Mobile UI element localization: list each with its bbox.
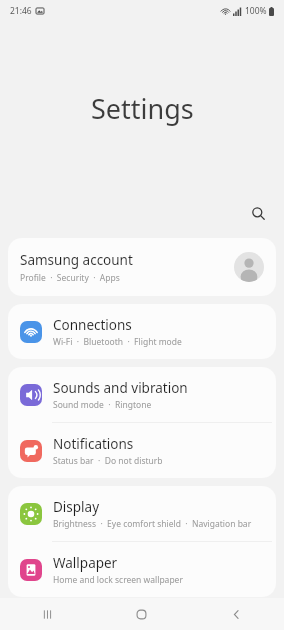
staticText: Settings — [91, 90, 194, 127]
staticText: Notifications — [53, 435, 134, 453]
button[interactable]: Account profile — [234, 252, 264, 282]
staticText: 100% — [245, 5, 267, 17]
staticText: Home and lock screen wallpaper — [53, 574, 183, 586]
staticText: Wi-Fi · Bluetooth · Flight mode — [53, 336, 182, 348]
staticText: Brightness · Eye comfort shield · Naviga… — [53, 518, 252, 530]
staticText: Status bar · Do not disturb — [53, 455, 163, 467]
button[interactable]: Samsung account — [8, 238, 276, 296]
staticText: Samsung account — [20, 251, 133, 269]
button[interactable]: Home — [94, 598, 189, 630]
button[interactable]: Back — [189, 598, 284, 630]
staticText: Wallpaper — [53, 554, 118, 572]
button[interactable]: Display — [8, 486, 276, 541]
button[interactable]: Wallpaper — [8, 542, 276, 597]
button[interactable]: Notifications — [8, 423, 276, 478]
button[interactable]: Connections — [8, 304, 276, 359]
staticText: Sound mode · Ringtone — [53, 399, 152, 411]
button[interactable]: Search — [243, 198, 273, 228]
staticText: Sounds and vibration — [53, 379, 188, 397]
staticText: Profile · Security · Apps — [20, 272, 120, 284]
staticText: Display — [53, 498, 100, 516]
button[interactable]: Recents — [0, 598, 94, 630]
button[interactable]: Sounds and vibration — [8, 367, 276, 422]
staticText: 21:46 — [10, 5, 32, 17]
staticText: Connections — [53, 316, 132, 334]
